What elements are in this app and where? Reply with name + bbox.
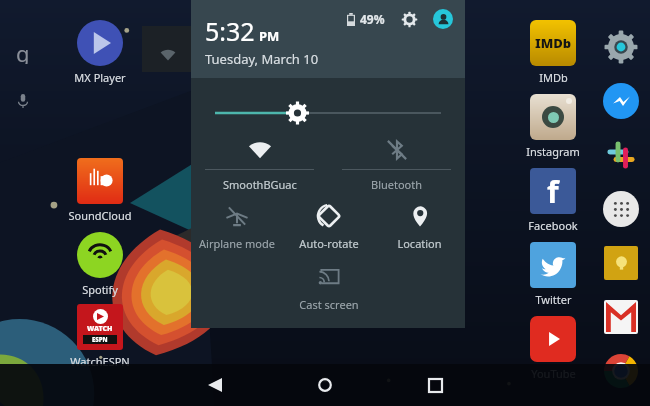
staticText: Bluetooth: [371, 177, 423, 192]
button[interactable]: Twitter: [516, 242, 590, 307]
staticText: ESPN: [92, 336, 108, 344]
staticText: Facebook: [528, 218, 578, 233]
button[interactable]: IMDb: [516, 20, 590, 85]
staticText: Auto-rotate: [299, 236, 359, 251]
button[interactable]: WATCH: [63, 304, 137, 369]
staticText: PM: [259, 27, 280, 45]
button[interactable]: YouTube: [516, 316, 590, 381]
button[interactable]: SmoothBGuac: [191, 138, 328, 192]
button[interactable]: Google search: [10, 38, 36, 64]
button[interactable]: f: [516, 168, 590, 233]
button[interactable]: SoundCloud: [63, 158, 137, 223]
button[interactable]: Back: [195, 365, 235, 405]
button[interactable]: Bluetooth: [328, 138, 465, 192]
button[interactable]: Instagram: [516, 94, 590, 159]
staticText: Cast screen: [299, 297, 359, 312]
button[interactable]: Voice search: [10, 88, 36, 114]
button[interactable]: Home: [305, 365, 345, 405]
button[interactable]: Auto-rotate: [283, 204, 374, 251]
staticText: 5:32: [205, 14, 255, 48]
staticText: g: [16, 38, 30, 64]
staticText: IMDb: [535, 34, 572, 52]
staticText: SoundCloud: [68, 208, 132, 223]
staticText: SmoothBGuac: [223, 177, 297, 192]
staticText: WATCH: [87, 324, 113, 334]
staticText: IMDb: [539, 70, 568, 85]
button[interactable]: Slack: [600, 134, 642, 176]
staticText: Instagram: [526, 144, 580, 159]
button[interactable]: All apps: [600, 188, 642, 230]
button[interactable]: Settings: [600, 26, 642, 68]
button[interactable]: Messenger: [600, 80, 642, 122]
button[interactable]: Recent apps: [415, 365, 455, 405]
staticText: Location: [397, 236, 442, 251]
staticText: Airplane mode: [199, 236, 275, 251]
button[interactable]: Keep notes: [600, 242, 642, 284]
button[interactable]: Chrome: [600, 350, 642, 392]
staticText: Twitter: [535, 292, 572, 307]
button[interactable]: Location: [374, 204, 465, 251]
staticText: YouTube: [531, 366, 576, 381]
button[interactable]: Gmail: [600, 296, 642, 338]
staticText: MX Player: [74, 70, 126, 85]
button[interactable]: User profile: [433, 9, 453, 29]
staticText: f: [547, 171, 559, 212]
staticText: Spotify: [82, 282, 118, 297]
staticText: Tuesday, March 10: [205, 50, 319, 68]
button[interactable]: Spotify: [63, 232, 137, 297]
button[interactable]: MX Player: [63, 20, 137, 85]
staticText: 49%: [360, 11, 385, 27]
button[interactable]: Cast screen: [283, 265, 374, 312]
button[interactable]: Airplane mode: [191, 204, 283, 251]
button[interactable]: Settings: [399, 9, 419, 29]
staticText: WatchESPN: [70, 354, 130, 369]
button[interactable]: Brightness: [191, 100, 465, 126]
